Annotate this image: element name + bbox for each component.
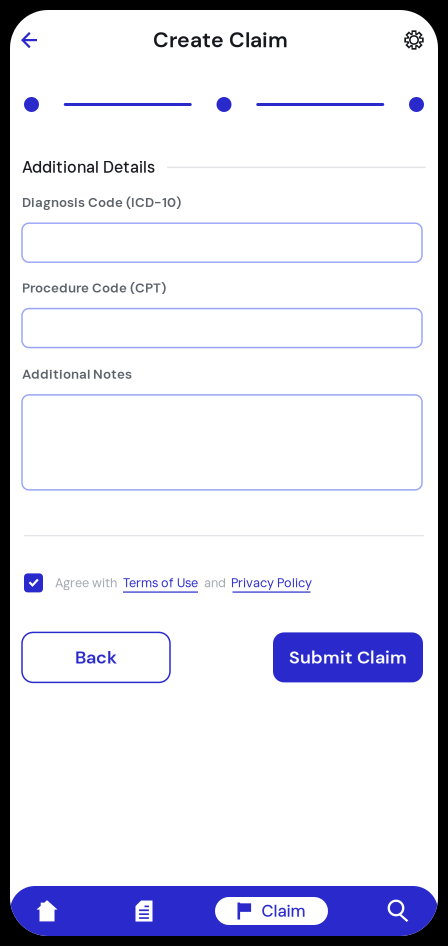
- staticText: Claim: [261, 900, 305, 922]
- button[interactable]: Agree to terms: [24, 573, 43, 592]
- button[interactable]: Settings: [399, 25, 429, 55]
- button[interactable]: Back: [22, 632, 170, 682]
- button[interactable]: Home: [21, 891, 73, 931]
- staticText: Back: [75, 646, 117, 669]
- staticText: and: [204, 575, 226, 591]
- staticText: Submit Claim: [289, 646, 407, 669]
- staticText: Procedure Code (CPT): [22, 279, 166, 297]
- button[interactable]: Claim: [215, 897, 328, 925]
- button[interactable]: Search: [373, 891, 425, 931]
- staticText: Diagnosis Code (ICD-10): [22, 194, 181, 211]
- staticText: Additional Details: [22, 157, 155, 178]
- staticText: Agree with: [55, 575, 117, 591]
- button[interactable]: Submit Claim: [273, 632, 423, 682]
- staticText: Terms of Use: [123, 575, 198, 591]
- staticText: Privacy Policy: [231, 575, 312, 591]
- button[interactable]: Terms of Use: [123, 575, 198, 591]
- staticText: Additional Notes: [22, 366, 132, 383]
- button[interactable]: Documents: [118, 891, 170, 931]
- button[interactable]: Back: [14, 25, 44, 55]
- staticText: Create Claim: [153, 26, 288, 54]
- button[interactable]: Privacy Policy: [231, 575, 312, 591]
